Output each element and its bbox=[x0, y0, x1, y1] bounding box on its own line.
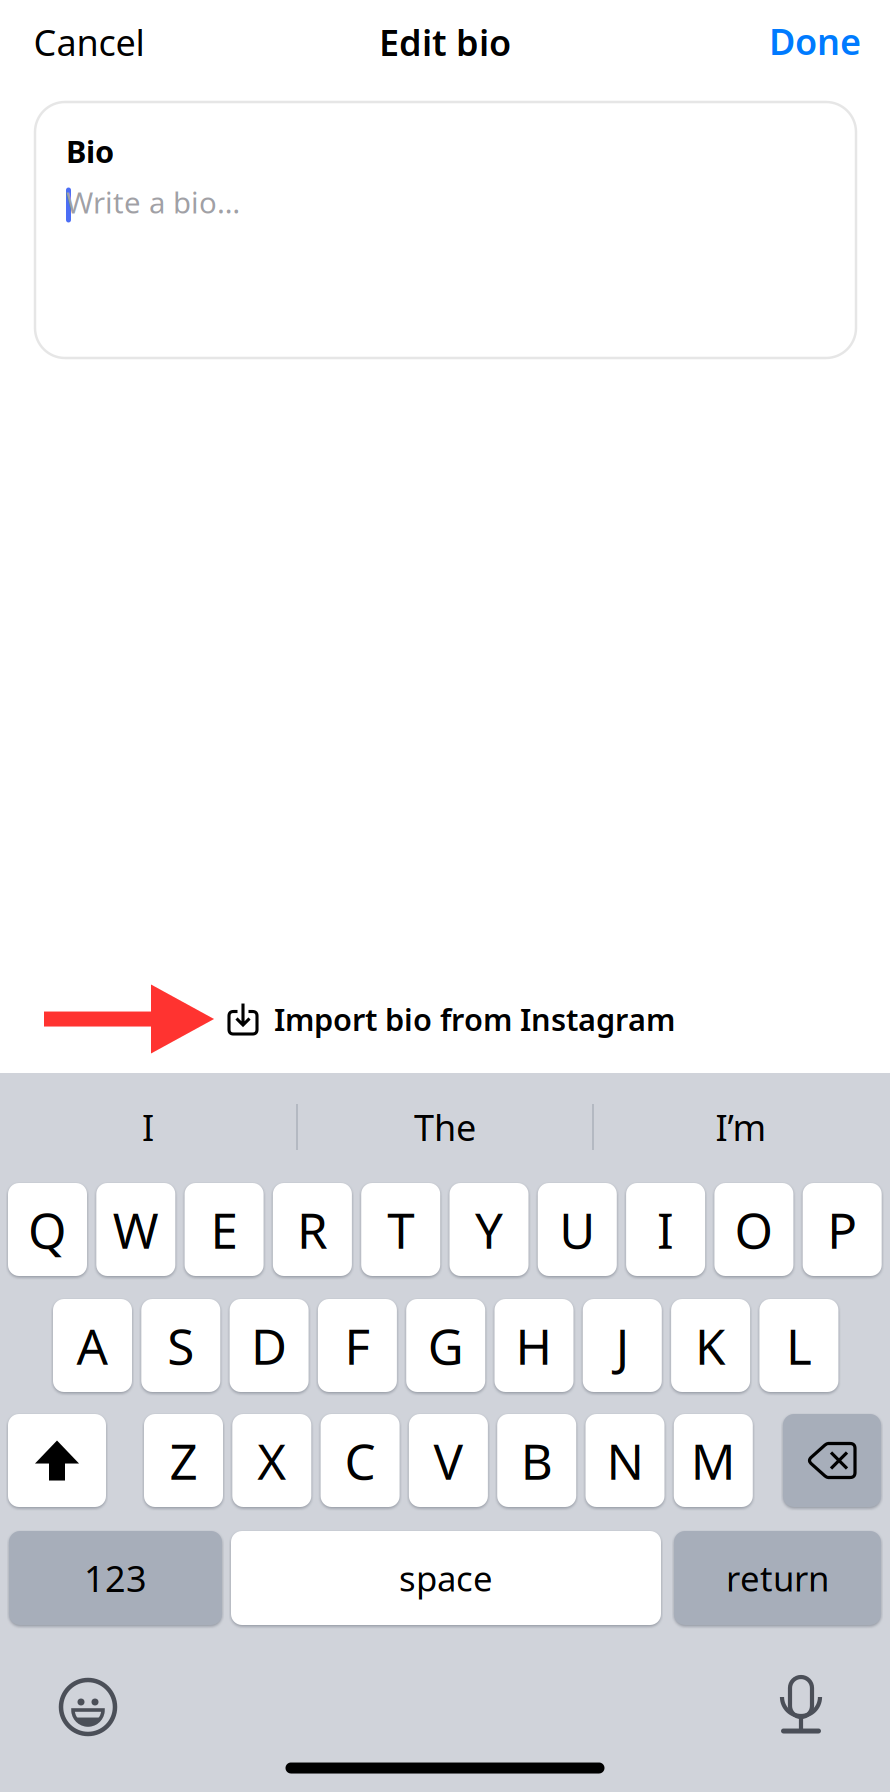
button[interactable]: H bbox=[494, 1299, 573, 1392]
button[interactable]: M bbox=[674, 1414, 753, 1507]
staticText: The bbox=[414, 1103, 476, 1151]
staticText: N bbox=[606, 1428, 643, 1493]
staticText: K bbox=[695, 1313, 726, 1378]
button[interactable]: Bio, Write a bio… bbox=[35, 102, 856, 358]
staticText: I bbox=[657, 1197, 674, 1262]
staticText: Done bbox=[769, 17, 861, 65]
staticText: X bbox=[257, 1428, 286, 1493]
staticText: I bbox=[142, 1103, 154, 1151]
staticText: Import bio from Instagram bbox=[274, 999, 675, 1039]
button[interactable]: return bbox=[674, 1531, 881, 1625]
button[interactable]: Import bio from Instagram bbox=[227, 999, 675, 1039]
button[interactable]: E bbox=[185, 1183, 264, 1276]
button[interactable]: Shift bbox=[8, 1414, 106, 1507]
staticText: O bbox=[734, 1197, 773, 1262]
button[interactable]: K bbox=[671, 1299, 750, 1392]
button[interactable]: N bbox=[585, 1414, 664, 1507]
button[interactable]: Done bbox=[755, 5, 875, 77]
staticText: J bbox=[616, 1313, 629, 1378]
button[interactable]: V bbox=[409, 1414, 488, 1507]
button[interactable]: G bbox=[406, 1299, 485, 1392]
button[interactable]: space bbox=[231, 1531, 661, 1625]
staticText: S bbox=[167, 1313, 194, 1378]
staticText: space bbox=[399, 1555, 493, 1601]
button[interactable]: Delete bbox=[783, 1414, 881, 1507]
button[interactable]: X bbox=[232, 1414, 311, 1507]
button[interactable]: I bbox=[8, 1088, 288, 1166]
staticText: E bbox=[211, 1197, 238, 1262]
staticText: Q bbox=[28, 1197, 67, 1262]
staticText: Y bbox=[475, 1197, 503, 1262]
button[interactable]: Emoji bbox=[61, 1680, 115, 1734]
button[interactable]: S bbox=[141, 1299, 220, 1392]
staticText: T bbox=[387, 1197, 414, 1262]
button[interactable]: D bbox=[230, 1299, 309, 1392]
staticText: V bbox=[433, 1428, 463, 1493]
button[interactable]: Z bbox=[144, 1414, 223, 1507]
staticText: P bbox=[827, 1197, 857, 1262]
staticText: D bbox=[251, 1313, 287, 1378]
staticText: Write a bio… bbox=[66, 182, 240, 221]
staticText: C bbox=[345, 1428, 376, 1493]
staticText: Bio bbox=[66, 131, 114, 171]
button[interactable]: Dictation bbox=[775, 1675, 827, 1737]
staticText: M bbox=[691, 1428, 736, 1493]
button[interactable]: F bbox=[318, 1299, 397, 1392]
staticText: G bbox=[428, 1313, 464, 1378]
staticText: A bbox=[76, 1313, 108, 1378]
staticText: F bbox=[344, 1313, 370, 1378]
button[interactable]: Q bbox=[8, 1183, 87, 1276]
button[interactable]: B bbox=[497, 1414, 576, 1507]
staticText: W bbox=[113, 1197, 159, 1262]
button[interactable]: R bbox=[273, 1183, 352, 1276]
button[interactable]: 123 bbox=[9, 1531, 222, 1625]
staticText: Z bbox=[169, 1428, 197, 1493]
staticText: H bbox=[515, 1313, 552, 1378]
staticText: R bbox=[297, 1197, 328, 1262]
button[interactable]: P bbox=[803, 1183, 882, 1276]
staticText: U bbox=[559, 1197, 595, 1262]
staticText: L bbox=[786, 1313, 812, 1378]
button[interactable]: The bbox=[305, 1088, 585, 1166]
button[interactable]: C bbox=[321, 1414, 400, 1507]
staticText: B bbox=[521, 1428, 553, 1493]
button[interactable]: O bbox=[714, 1183, 793, 1276]
staticText: Cancel bbox=[33, 18, 144, 66]
staticText: I’m bbox=[715, 1103, 766, 1151]
button[interactable]: T bbox=[361, 1183, 440, 1276]
button[interactable]: Y bbox=[449, 1183, 528, 1276]
staticText: 123 bbox=[84, 1554, 147, 1602]
button[interactable]: J bbox=[583, 1299, 662, 1392]
button[interactable]: U bbox=[538, 1183, 617, 1276]
button[interactable]: L bbox=[759, 1299, 838, 1392]
staticText: Edit bio bbox=[379, 18, 511, 66]
button[interactable]: I’m bbox=[601, 1088, 881, 1166]
staticText: return bbox=[726, 1555, 829, 1601]
button[interactable]: W bbox=[96, 1183, 175, 1276]
button[interactable]: Cancel bbox=[19, 6, 158, 78]
button[interactable]: I bbox=[626, 1183, 705, 1276]
button[interactable]: A bbox=[53, 1299, 132, 1392]
